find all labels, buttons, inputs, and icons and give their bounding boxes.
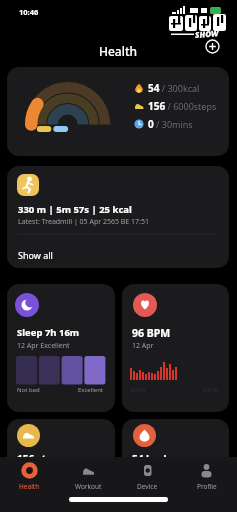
button[interactable]: 54 kcal <box>122 419 229 512</box>
staticText: 0 / 30mins <box>148 117 193 131</box>
staticText: 156 steps <box>17 452 64 466</box>
staticText: Profile <box>197 482 217 491</box>
staticText: 54 / 300kcal <box>148 81 200 95</box>
staticText: Workout <box>75 482 102 491</box>
staticText: 00:00 <box>130 386 146 394</box>
button[interactable]: 96 BPM <box>122 284 229 412</box>
staticText: Health <box>99 43 138 59</box>
staticText: Not bad <box>17 386 40 394</box>
button[interactable]: 156 steps <box>7 419 115 512</box>
staticText: 24:00 <box>203 386 219 394</box>
staticText: 330 m | 5m 57s | 25 kcal <box>18 203 132 216</box>
button[interactable]: 54 / 300kcal <box>7 67 229 156</box>
staticText: 12 Apr Excellent <box>17 341 70 351</box>
staticText: Device <box>137 482 158 491</box>
staticText: 156 / 6000steps <box>148 99 217 113</box>
button[interactable] <box>204 38 221 55</box>
button[interactable]: Health <box>0 457 59 491</box>
staticText: Health <box>19 482 40 491</box>
staticText: Sleep 7h 16m <box>17 326 80 339</box>
staticText: 10:46 <box>19 7 39 17</box>
button[interactable]: 330 m | 5m 57s | 25 kcal <box>7 166 229 268</box>
staticText: 96 BPM <box>132 326 171 340</box>
button[interactable]: Workout <box>59 457 118 491</box>
staticText: Show all <box>18 249 53 261</box>
staticText: Latest: Treadmill | 05 Apr 2565 BE 17:51 <box>18 217 149 227</box>
button[interactable]: Device <box>118 457 177 491</box>
button[interactable]: Show all <box>7 235 229 268</box>
button[interactable]: Sleep 7h 16m <box>7 284 115 412</box>
staticText: 54 kcal <box>132 452 167 466</box>
button[interactable]: Profile <box>177 457 236 491</box>
staticText: Excellent <box>78 386 104 394</box>
staticText: 12 Apr <box>132 341 154 351</box>
staticText: SHOW <box>195 27 219 40</box>
